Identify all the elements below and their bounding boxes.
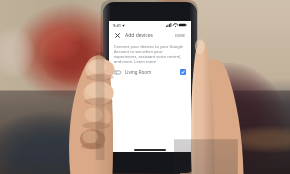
staticText: Living Room xyxy=(125,69,152,75)
button[interactable]: DONE xyxy=(173,32,187,39)
button[interactable]: Living Room xyxy=(109,64,191,80)
button[interactable]: Close xyxy=(113,31,122,40)
button[interactable]: Living Room selected xyxy=(180,69,186,75)
staticText: DONE xyxy=(175,33,185,38)
staticText: Add devices xyxy=(125,32,153,39)
staticText: 9:41 xyxy=(113,23,121,28)
staticText: Connect your devices to your Google Acco… xyxy=(114,44,185,64)
